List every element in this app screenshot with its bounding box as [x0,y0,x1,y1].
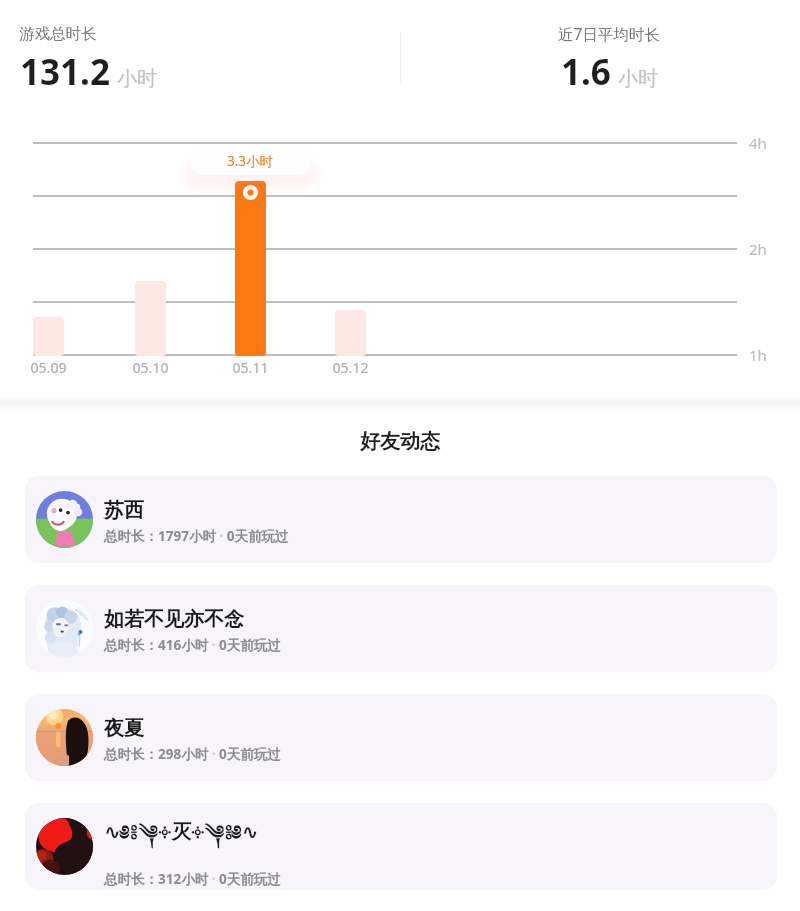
staticText: 总时长：1797小时 · 0天前玩过 [104,527,289,545]
button[interactable]: Play time bar for 05.09 [33,317,64,356]
staticText: 1.6 [561,48,611,96]
staticText: 小时 [117,66,157,91]
button[interactable]: 苏西 avatar [25,476,777,563]
staticText: 1h [749,345,767,365]
staticText: 近7日平均时长 [558,23,660,44]
staticText: ∿༅༔༆༓灭༓༆༔༅∿ [104,810,259,866]
button[interactable]: ∿༅༔༆༓灭༓༆༔༅∿ avatar [25,803,777,890]
staticText: 05.12 [323,358,378,377]
staticText: 05.10 [123,358,178,377]
other: 苏西 avatar [36,491,93,548]
staticText: 2h [749,239,767,259]
staticText: 131.2 [20,48,110,96]
staticText: 总时长：416小时 · 0天前玩过 [104,636,281,654]
staticText: 总时长：298小时 · 0天前玩过 [104,745,281,763]
staticText: 如若不见亦不念 [104,607,244,632]
staticText: 3.3小时 [189,152,311,170]
button[interactable]: 夜夏 avatar [25,694,777,781]
staticText: 05.09 [21,358,76,377]
staticText: 夜夏 [104,716,144,741]
staticText: 好友动态 [0,429,800,454]
button[interactable]: 如若不见亦不念 avatar [25,585,777,672]
other: 如若不见亦不念 avatar [36,600,93,657]
button[interactable]: 3.3小时 [189,146,311,175]
other: ∿༅༔༆༓灭༓༆༔༅∿ avatar [36,818,93,875]
staticText: 小时 [618,66,658,91]
other: 夜夏 avatar [36,709,93,766]
button[interactable]: Play time bar for 05.11 [235,181,266,356]
staticText: 总时长：312小时 · 0天前玩过 [104,870,281,888]
staticText: 4h [749,133,767,153]
staticText: 苏西 [104,498,144,523]
button[interactable]: Play time bar for 05.12 [335,310,366,356]
staticText: 游戏总时长 [19,24,97,44]
staticText: 05.11 [223,358,278,377]
